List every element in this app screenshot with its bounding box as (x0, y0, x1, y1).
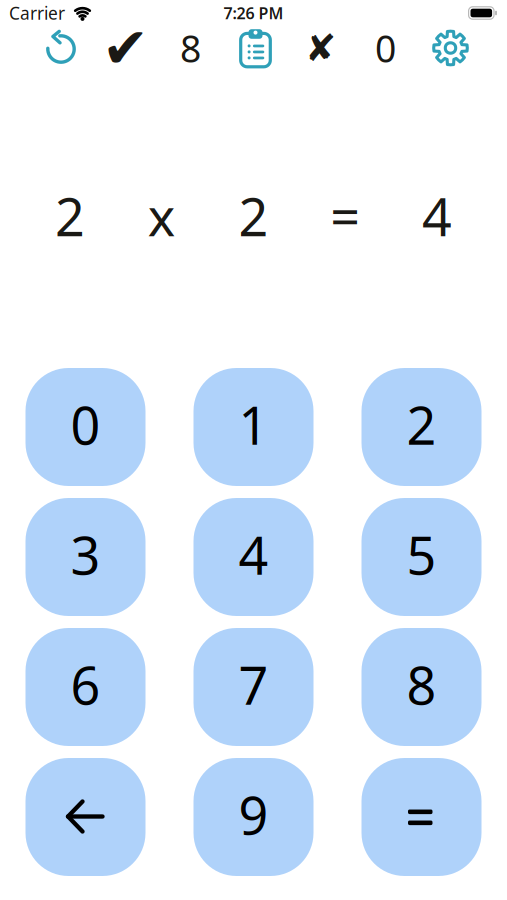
button[interactable]: Equals (361, 758, 481, 876)
staticText: 0 (375, 23, 396, 73)
staticText: 7:26 PM (223, 2, 283, 24)
button[interactable]: 3 (25, 498, 145, 616)
staticText: 8 (180, 23, 201, 73)
staticText: 8 (406, 650, 436, 719)
button[interactable]: Restart (28, 28, 93, 68)
button[interactable]: Results (223, 27, 288, 69)
staticText: 4 (422, 181, 452, 251)
staticText: 1 (238, 390, 268, 459)
staticText: ✔ (102, 16, 149, 80)
staticText: 2 (238, 181, 268, 251)
button[interactable]: 8 (361, 628, 481, 746)
staticText: 3 (70, 520, 100, 589)
staticText: 6 (70, 650, 100, 719)
button[interactable]: 5 (361, 498, 481, 616)
staticText: = (330, 181, 360, 251)
staticText: 9 (238, 780, 268, 849)
staticText: x (148, 181, 176, 251)
button[interactable]: 4 (193, 498, 313, 616)
button[interactable]: 7 (193, 628, 313, 746)
staticText: 2 (406, 390, 436, 459)
button[interactable]: 9 (193, 758, 313, 876)
button[interactable]: 6 (25, 628, 145, 746)
staticText: 5 (406, 520, 436, 589)
staticText: 7 (238, 650, 268, 719)
button[interactable]: 1 (193, 368, 313, 486)
button[interactable]: Settings (418, 28, 483, 68)
button[interactable]: 0 (25, 368, 145, 486)
button[interactable]: 2 (361, 368, 481, 486)
staticText: 0 (70, 390, 100, 459)
staticText: 4 (238, 520, 268, 589)
button[interactable]: Delete (25, 758, 145, 876)
staticText: 2 (55, 181, 85, 251)
staticText: Carrier (9, 1, 65, 24)
staticText: ✘ (305, 27, 336, 69)
